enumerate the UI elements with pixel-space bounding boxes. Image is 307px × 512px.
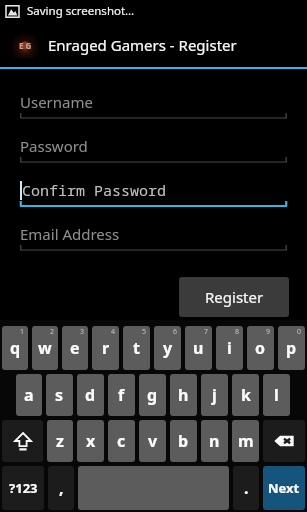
staticText: w xyxy=(38,337,52,359)
staticText: 2 xyxy=(50,327,55,337)
button[interactable]: p xyxy=(278,326,305,370)
staticText: Next xyxy=(268,479,300,497)
button[interactable]: Username xyxy=(20,90,287,120)
staticText: Email Address xyxy=(20,224,120,244)
staticText: c xyxy=(117,430,126,452)
staticText: y xyxy=(163,337,173,359)
button[interactable]: d xyxy=(77,374,104,416)
button[interactable]: Next xyxy=(263,466,305,510)
staticText: Saving screenshot… xyxy=(27,3,135,19)
staticText: g xyxy=(147,384,158,406)
staticText: 6 xyxy=(173,327,178,337)
button[interactable]: h xyxy=(170,374,197,416)
button[interactable]: , xyxy=(48,466,74,510)
staticText: 5 xyxy=(142,327,147,337)
button[interactable]: l xyxy=(263,374,290,416)
staticText: h xyxy=(178,384,189,406)
staticText: m xyxy=(238,430,254,452)
staticText: 3 xyxy=(80,327,85,337)
button[interactable]: o xyxy=(247,326,274,370)
button[interactable]: s xyxy=(46,374,73,416)
button[interactable]: j xyxy=(201,374,228,416)
staticText: d xyxy=(85,384,96,406)
button[interactable]: g xyxy=(139,374,166,416)
button[interactable]: Shift xyxy=(2,420,43,462)
staticText: q xyxy=(10,337,21,359)
staticText: Register xyxy=(205,287,264,307)
staticText: z xyxy=(56,430,64,452)
staticText: , xyxy=(59,477,64,499)
button[interactable]: . xyxy=(233,466,259,510)
button[interactable]: n xyxy=(201,420,228,462)
staticText: 1 xyxy=(20,327,25,337)
button[interactable]: q xyxy=(2,326,28,370)
button[interactable]: v xyxy=(139,420,166,462)
button[interactable]: f xyxy=(108,374,135,416)
staticText: Username xyxy=(20,92,93,112)
button[interactable]: ?123 xyxy=(2,466,44,510)
staticText: f xyxy=(118,384,125,406)
staticText: v xyxy=(148,430,158,452)
staticText: Password xyxy=(20,136,88,156)
staticText: x xyxy=(86,430,96,452)
staticText: 7 xyxy=(204,327,209,337)
button[interactable]: x xyxy=(77,420,104,462)
staticText: Enraged Gamers - Register xyxy=(48,35,237,55)
button[interactable]: e xyxy=(62,326,88,370)
staticText: 8 xyxy=(235,327,240,337)
button[interactable]: Confirm Password xyxy=(20,178,287,208)
button[interactable]: Email Address xyxy=(20,222,287,252)
button[interactable]: b xyxy=(170,420,197,462)
staticText: ?123 xyxy=(9,479,38,497)
button[interactable]: z xyxy=(47,420,73,462)
staticText: u xyxy=(193,337,204,359)
button[interactable]: Enraged Gamers logo xyxy=(12,32,38,58)
button[interactable]: c xyxy=(108,420,135,462)
staticText: n xyxy=(209,430,220,452)
button[interactable]: m xyxy=(232,420,259,462)
button[interactable]: w xyxy=(32,326,58,370)
button[interactable]: a xyxy=(16,374,42,416)
staticText: e xyxy=(70,337,80,359)
button[interactable]: k xyxy=(232,374,259,416)
staticText: t xyxy=(133,337,140,359)
button[interactable]: i xyxy=(216,326,243,370)
staticText: s xyxy=(55,384,64,406)
staticText: l xyxy=(274,384,279,406)
staticText: 0 xyxy=(297,327,302,337)
staticText: k xyxy=(241,384,251,406)
staticText: . xyxy=(244,477,249,499)
button[interactable]: t xyxy=(123,326,150,370)
button[interactable]: y xyxy=(154,326,181,370)
button[interactable]: r xyxy=(92,326,119,370)
staticText: 4 xyxy=(111,327,116,337)
staticText: i xyxy=(227,337,232,359)
staticText: E G xyxy=(19,40,32,51)
button[interactable]: Backspace xyxy=(263,420,305,462)
staticText: o xyxy=(255,337,266,359)
button[interactable]: u xyxy=(185,326,212,370)
staticText: j xyxy=(212,384,217,406)
staticText: Confirm Password xyxy=(22,180,167,200)
staticText: r xyxy=(102,337,110,359)
staticText: 9 xyxy=(266,327,271,337)
staticText: b xyxy=(178,430,189,452)
staticText: a xyxy=(24,384,34,406)
staticText: p xyxy=(286,337,297,359)
button[interactable]: Password xyxy=(20,134,287,164)
button[interactable]: Register xyxy=(179,277,289,317)
